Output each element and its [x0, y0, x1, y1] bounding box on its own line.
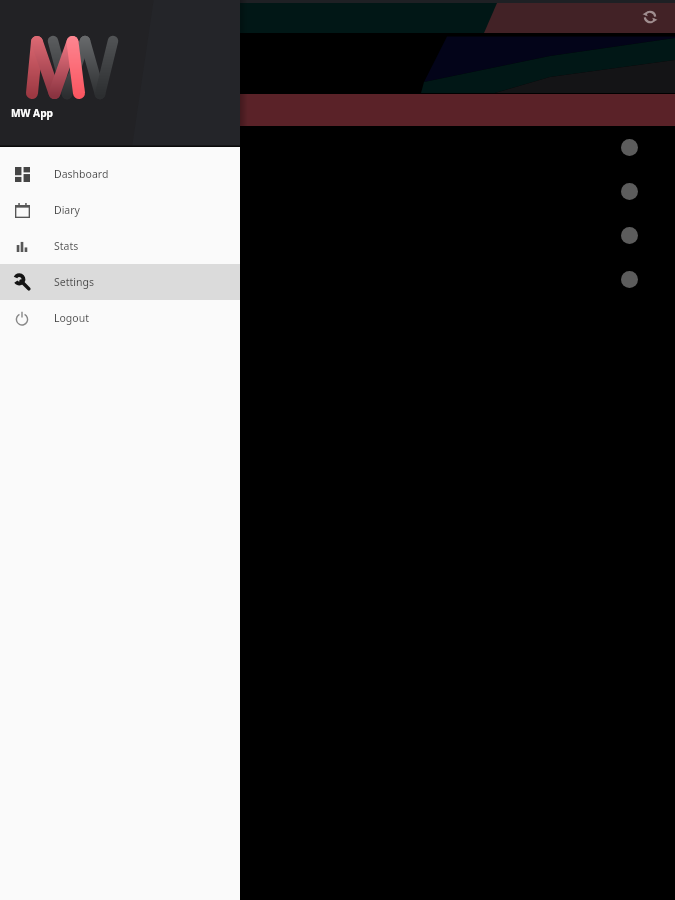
button[interactable]: Diary: [0, 192, 240, 228]
button[interactable]: Quick action: [621, 183, 638, 200]
staticText: Settings: [54, 275, 94, 289]
button[interactable]: Quick action: [621, 271, 638, 288]
staticText: Diary: [54, 203, 80, 217]
staticText: MW App: [11, 106, 54, 120]
button[interactable]: Dashboard: [0, 156, 240, 192]
button[interactable]: Quick action: [621, 227, 638, 244]
button[interactable]: Stats: [0, 228, 240, 264]
button[interactable]: Refresh: [637, 4, 663, 30]
staticText: Dashboard: [54, 167, 109, 181]
staticText: Stats: [54, 239, 79, 253]
button[interactable]: Logout: [0, 300, 240, 336]
staticText: Logout: [54, 311, 89, 325]
button[interactable]: Quick action: [621, 139, 638, 156]
button[interactable]: Settings: [0, 264, 240, 300]
